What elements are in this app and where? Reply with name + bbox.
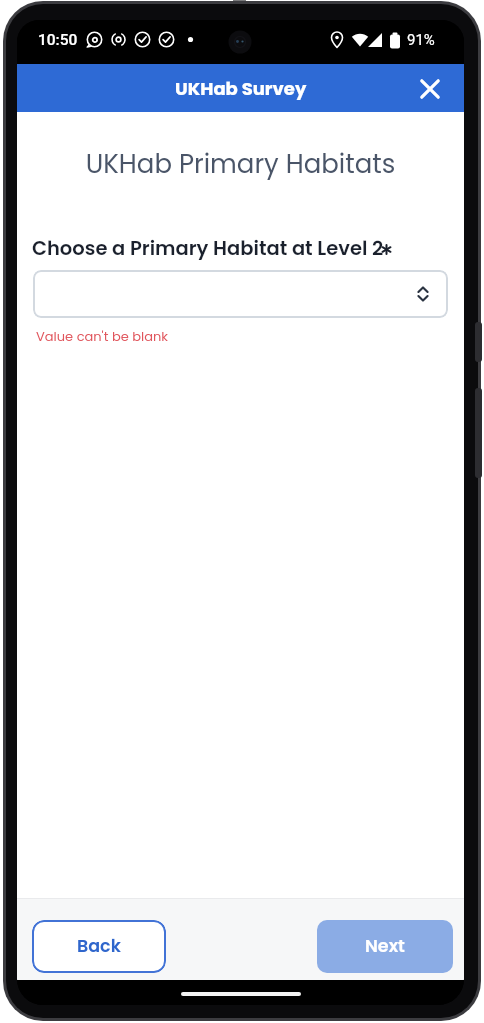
- staticText: 91%: [407, 31, 435, 49]
- staticText: UKHab Survey: [175, 76, 307, 101]
- staticText: UKHab Primary Habitats: [17, 146, 464, 182]
- button[interactable]: Back: [32, 920, 166, 973]
- staticText: Next: [365, 934, 405, 959]
- staticText: 10:50: [38, 31, 78, 49]
- staticText: Choose a Primary Habitat at Level 2: [32, 235, 384, 262]
- button[interactable]: [33, 270, 448, 318]
- staticText: Value can't be blank: [36, 327, 169, 345]
- button[interactable]: Next: [317, 920, 453, 973]
- staticText: Back: [77, 934, 121, 959]
- button[interactable]: [412, 70, 448, 106]
